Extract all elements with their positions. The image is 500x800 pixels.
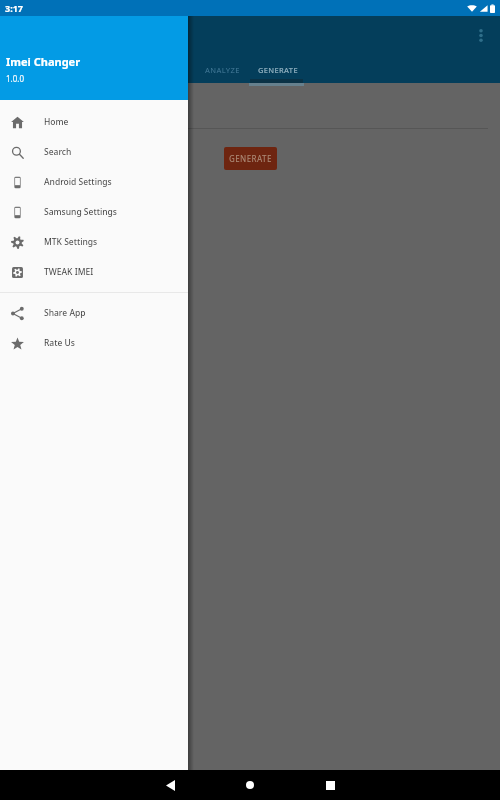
button[interactable]: More options (469, 23, 493, 47)
button[interactable]: ANALYZE (195, 56, 250, 83)
button[interactable]: Home (235, 770, 265, 800)
staticText: Samsung Settings (44, 206, 117, 218)
staticText: Rate Us (44, 337, 75, 349)
button[interactable]: Android Settings (0, 167, 188, 197)
button[interactable]: TWEAK IMEI (0, 257, 188, 287)
button[interactable]: GENERATE (224, 147, 277, 170)
staticText: 1.0.0 (6, 73, 25, 84)
staticText: 3:17 (5, 2, 23, 14)
staticText: GENERATE (258, 65, 298, 75)
button[interactable]: Recents (315, 770, 345, 800)
staticText: GENERATE (229, 153, 272, 164)
button[interactable]: Search (0, 137, 188, 167)
staticText: Imei Changer (6, 54, 81, 69)
staticText: Share App (44, 307, 86, 319)
button[interactable]: Home (0, 107, 188, 137)
button[interactable]: Rate Us (0, 328, 188, 358)
button[interactable]: Samsung Settings (0, 197, 188, 227)
staticText: TWEAK IMEI (44, 266, 94, 278)
staticText: MTK Settings (44, 236, 98, 248)
staticText: Home (44, 116, 69, 128)
staticText: Android Settings (44, 176, 112, 188)
staticText: ANALYZE (205, 65, 240, 75)
button[interactable]: GENERATE (250, 56, 305, 83)
button[interactable]: Share App (0, 298, 188, 328)
staticText: Search (44, 146, 72, 158)
button[interactable]: Back (155, 770, 185, 800)
button[interactable]: MTK Settings (0, 227, 188, 257)
